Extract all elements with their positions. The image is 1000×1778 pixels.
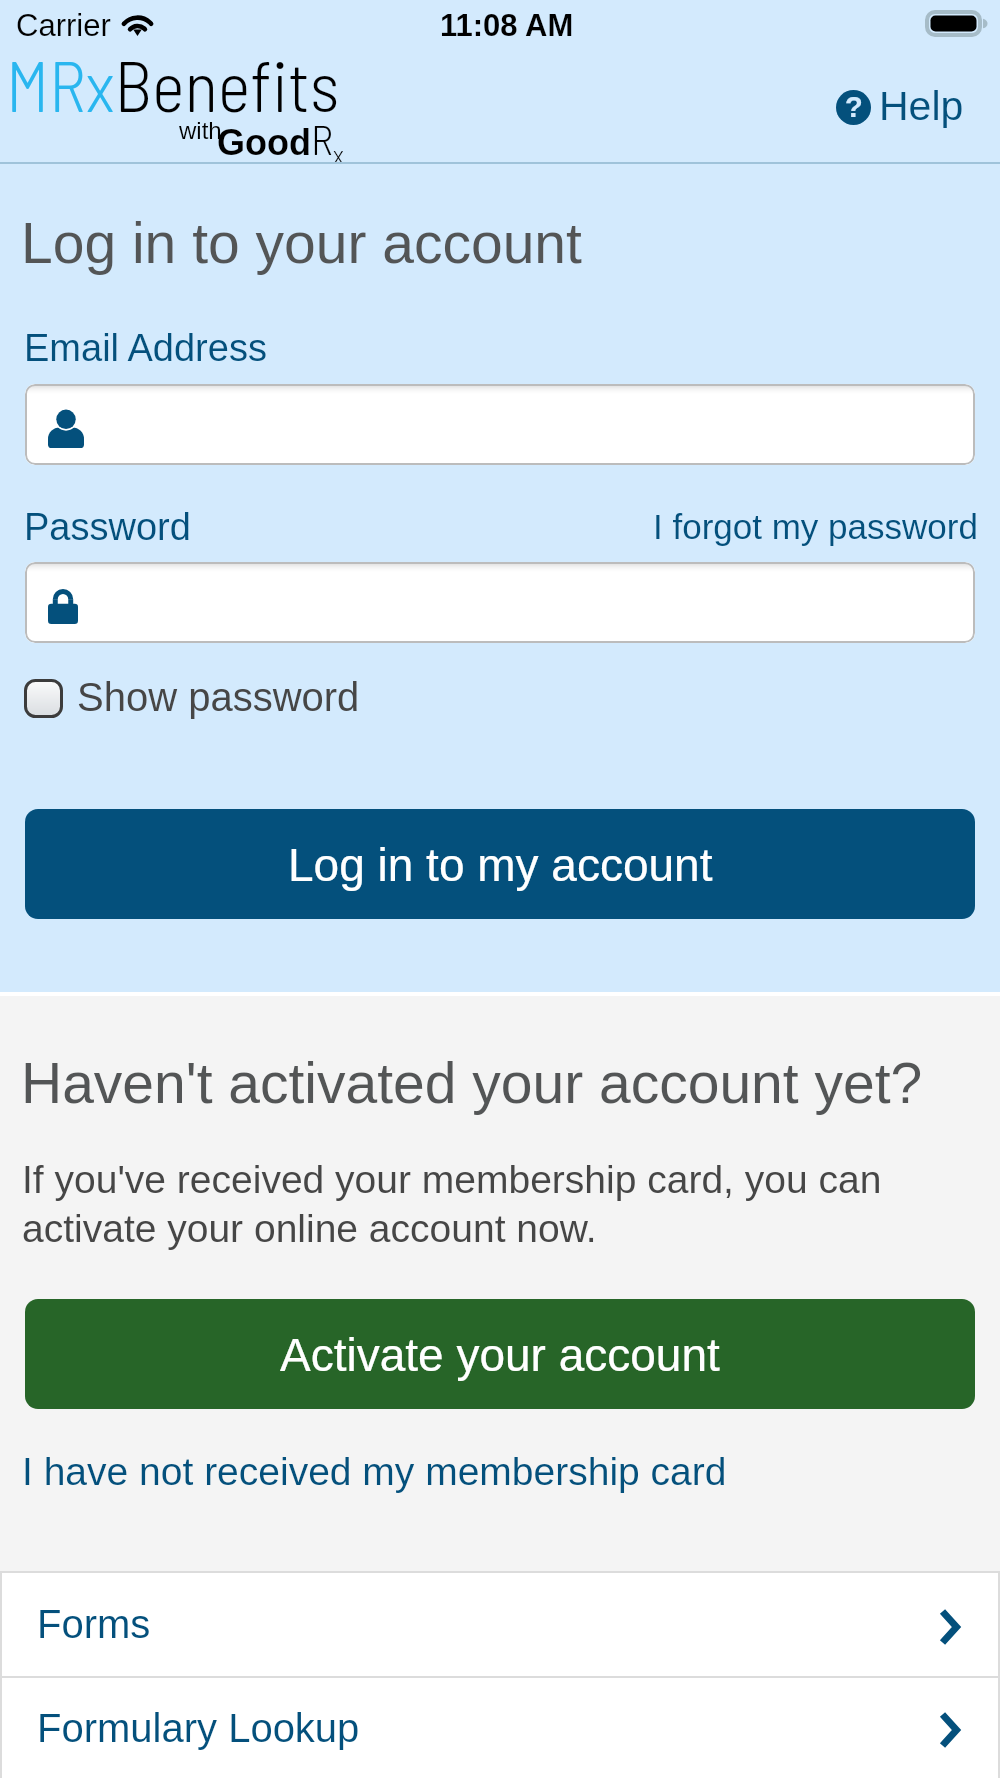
- staticText: Password: [24, 506, 191, 548]
- staticText: Formulary Lookup: [37, 1706, 360, 1751]
- button[interactable]: [25, 562, 975, 643]
- staticText: Haven't activated your account yet?: [21, 1051, 923, 1115]
- staticText: Email Address: [24, 327, 267, 369]
- other: Open Forms: [939, 1608, 960, 1646]
- staticText: MRxBenefits: [6, 56, 340, 126]
- button[interactable]: Formulary Lookup: [2, 1678, 998, 1778]
- staticText: Activate your account: [280, 1329, 720, 1380]
- staticText: Forms: [37, 1602, 151, 1647]
- button[interactable]: ?: [806, 62, 994, 152]
- button[interactable]: [25, 384, 975, 465]
- button[interactable]: Show password: [24, 676, 360, 721]
- staticText: Show password: [77, 675, 360, 720]
- staticText: with: [179, 117, 222, 144]
- button[interactable]: Activate your account: [25, 1299, 975, 1409]
- staticText: I forgot my password: [653, 507, 978, 546]
- staticText: Log in to your account: [21, 211, 582, 275]
- button[interactable]: Forms: [2, 1573, 998, 1676]
- button[interactable]: Log in to my account: [25, 809, 975, 919]
- staticText: GoodRx: [217, 113, 344, 162]
- staticText: Log in to my account: [288, 839, 713, 890]
- staticText: 11:08 AM: [440, 8, 574, 43]
- staticText: Carrier: [16, 8, 111, 43]
- other: Open Formulary Lookup: [939, 1711, 960, 1749]
- button[interactable]: I forgot my password: [643, 495, 988, 558]
- staticText: I have not received my membership card: [22, 1450, 727, 1494]
- staticText: If you've received your membership card,…: [22, 1158, 922, 1251]
- button[interactable]: I have not received my membership card: [12, 1438, 737, 1506]
- staticText: ?: [845, 91, 863, 123]
- staticText: Help: [879, 83, 964, 129]
